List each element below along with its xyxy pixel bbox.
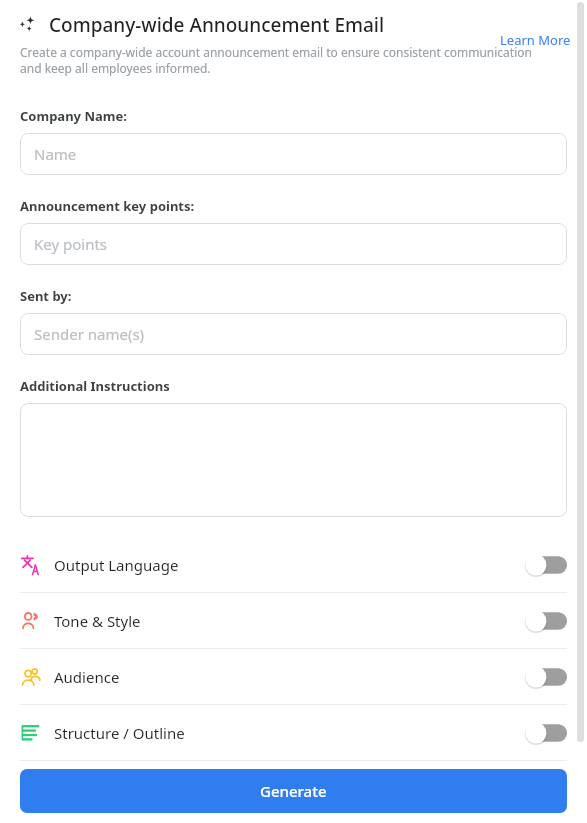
staticText: Generate — [260, 781, 327, 801]
staticText: Company Name: — [20, 107, 127, 125]
button[interactable]: Tone & Style — [0, 593, 587, 648]
button[interactable]: Toggle option — [525, 554, 567, 576]
staticText: Structure / Outline — [54, 723, 185, 743]
button[interactable]: Name — [20, 133, 567, 175]
staticText: Additional Instructions — [20, 377, 170, 395]
button[interactable]: Learn More — [500, 31, 571, 49]
staticText: Company-wide Announcement Email — [49, 12, 385, 38]
button[interactable]: Toggle option — [525, 666, 567, 688]
button[interactable]: Generate — [20, 769, 567, 813]
staticText: Name — [34, 144, 77, 164]
button[interactable]: Toggle option — [525, 722, 567, 744]
staticText: Key points — [34, 234, 108, 254]
button[interactable]: Structure / Outline — [0, 705, 587, 760]
button[interactable]: Toggle option — [525, 610, 567, 632]
staticText: Tone & Style — [54, 611, 141, 631]
button[interactable] — [20, 403, 567, 517]
staticText: Learn More — [500, 31, 571, 49]
button[interactable]: Audience — [0, 649, 587, 704]
button[interactable]: Key points — [20, 223, 567, 265]
staticText: Output Language — [54, 555, 179, 575]
staticText: Create a company-wide account announceme… — [20, 44, 532, 77]
staticText: Sent by: — [20, 287, 72, 305]
staticText: Sender name(s) — [34, 324, 145, 344]
staticText: Announcement key points: — [20, 197, 195, 215]
button[interactable]: Output Language — [0, 537, 587, 592]
staticText: Audience — [54, 667, 120, 687]
button[interactable]: Sender name(s) — [20, 313, 567, 355]
